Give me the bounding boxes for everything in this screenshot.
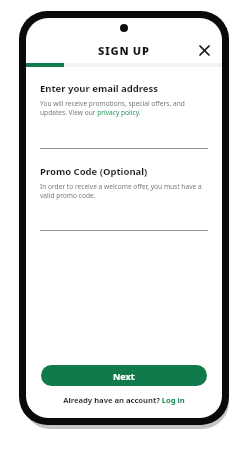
button[interactable]: Next (41, 365, 207, 386)
staticText: Next (113, 370, 135, 382)
staticText: Promo Code (Optional) (40, 165, 148, 178)
staticText: You will receive promotions, special off… (40, 99, 208, 117)
button[interactable]: Already have an account? Log in (63, 395, 185, 405)
button[interactable]: SIGN UP (98, 43, 150, 58)
staticText: In order to receive a welcome offer, you… (40, 182, 208, 200)
staticText: Already have an account? Log in (63, 395, 185, 405)
button[interactable]: Close sign up (194, 40, 214, 60)
button[interactable] (40, 129, 208, 149)
staticText: Enter your email address (40, 82, 158, 95)
button[interactable] (40, 211, 208, 231)
staticText: SIGN UP (98, 43, 150, 58)
